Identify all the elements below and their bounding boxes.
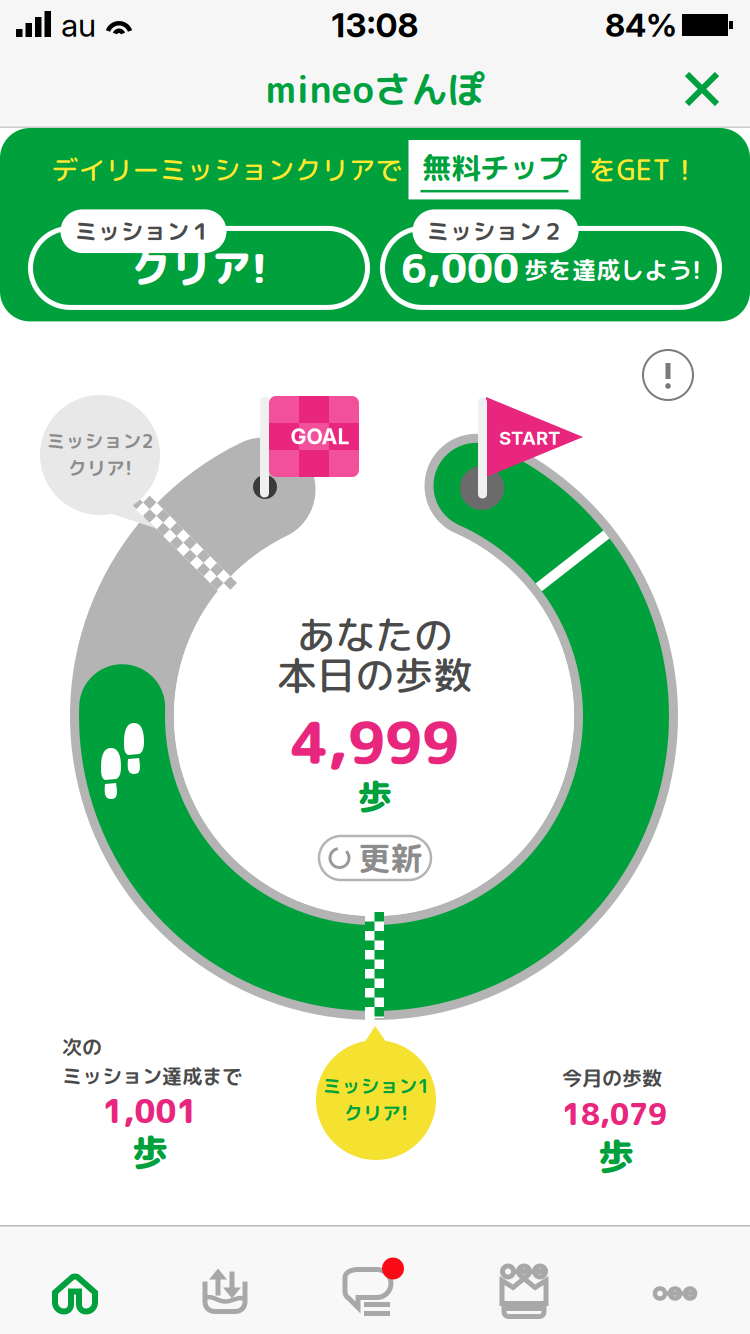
staticText: 6,000 xyxy=(401,240,519,296)
staticText: au xyxy=(61,6,96,44)
staticText: 84% xyxy=(605,6,677,44)
button[interactable]: Rewards xyxy=(450,1225,600,1334)
staticText: 18,079 xyxy=(562,1093,667,1134)
staticText: 13:08 xyxy=(331,5,418,45)
staticText: ミッション2 xyxy=(46,428,153,454)
staticText: デイリーミッションクリアで xyxy=(51,151,402,188)
button[interactable]: Home xyxy=(0,1225,150,1334)
staticText: 歩を達成しよう! xyxy=(524,253,701,287)
staticText: 無料チップ xyxy=(422,147,567,188)
button[interactable]: More xyxy=(600,1225,750,1334)
button[interactable]: クリア! xyxy=(30,209,367,307)
staticText: ミッション１ xyxy=(74,215,212,247)
staticText: ミッション達成まで xyxy=(62,1062,242,1090)
staticText: 歩 xyxy=(357,772,392,820)
button[interactable]: Information xyxy=(641,348,697,404)
staticText: クリア! xyxy=(344,1100,408,1126)
staticText: クリア! xyxy=(131,240,267,296)
staticText: mineoさんぽ xyxy=(265,63,484,115)
button[interactable]: 更新 xyxy=(319,836,431,880)
button[interactable]: Data usage xyxy=(150,1225,300,1334)
staticText: 今月の歩数 xyxy=(562,1064,662,1092)
staticText: 4,999 xyxy=(291,702,459,782)
staticText: クリア! xyxy=(68,455,132,481)
staticText: GOAL xyxy=(290,424,349,449)
staticText: 歩 xyxy=(132,1127,168,1177)
staticText: 更新 xyxy=(358,836,422,880)
staticText: あなたの xyxy=(297,608,453,662)
staticText: 歩 xyxy=(598,1131,634,1181)
staticText: ミッション1 xyxy=(322,1073,429,1099)
staticText: 1,001 xyxy=(102,1089,197,1133)
button[interactable]: 6,000 xyxy=(382,209,719,307)
staticText: 次の xyxy=(62,1033,102,1061)
staticText: ミッション２ xyxy=(426,215,564,247)
button[interactable]: Messages xyxy=(300,1225,450,1334)
staticText: START xyxy=(499,427,560,449)
staticText: 本日の歩数 xyxy=(277,648,472,702)
staticText: をGET！ xyxy=(588,150,698,189)
button[interactable]: Close xyxy=(666,53,738,125)
